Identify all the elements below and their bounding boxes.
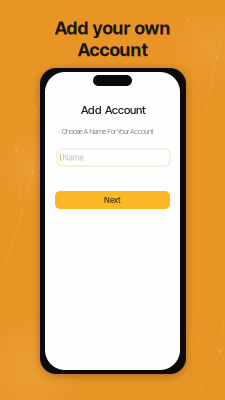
staticText: Name — [62, 153, 83, 162]
staticText: Account — [77, 39, 147, 61]
button[interactable]: Next — [55, 191, 170, 209]
staticText: Choose A Name For Your Account — [62, 127, 153, 136]
staticText: Add Account — [81, 103, 146, 117]
button[interactable]: Name — [57, 149, 170, 166]
staticText: Next — [104, 195, 121, 205]
staticText: Add your own — [54, 17, 170, 39]
